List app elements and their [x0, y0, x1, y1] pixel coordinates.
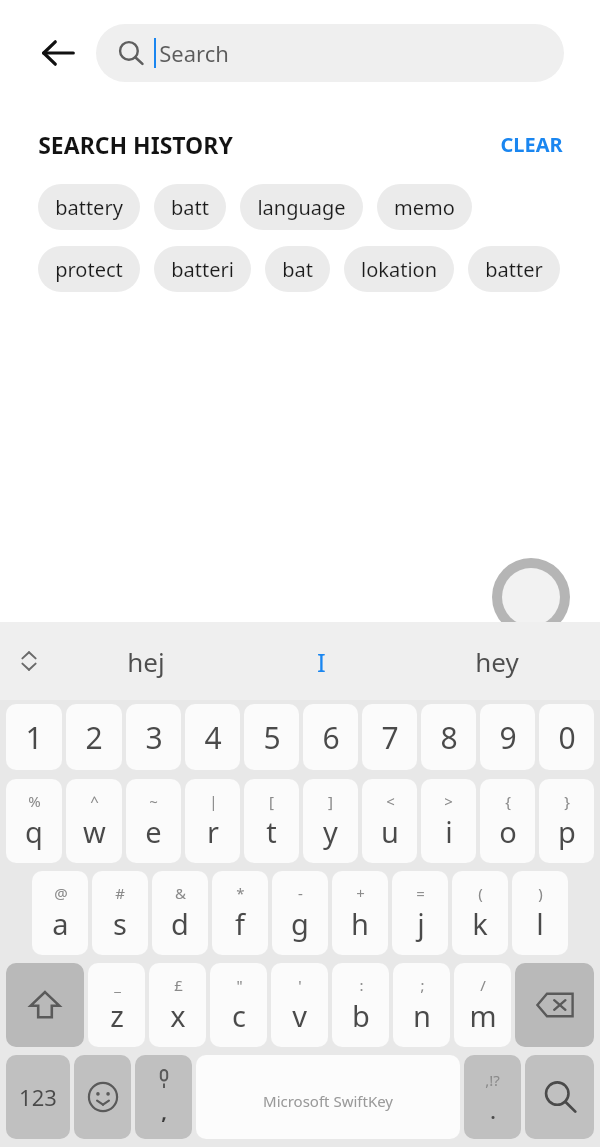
button[interactable]: _	[88, 963, 145, 1047]
button[interactable]: 0	[539, 704, 594, 770]
staticText: Microsoft SwiftKey	[263, 1091, 393, 1111]
button[interactable]: @	[32, 871, 88, 955]
button[interactable]: ;	[393, 963, 450, 1047]
staticText: batt	[171, 194, 209, 221]
staticText: ]	[328, 791, 333, 811]
button[interactable]: hey	[409, 622, 584, 700]
button[interactable]: Space	[196, 1055, 460, 1139]
staticText: _	[114, 975, 121, 995]
staticText: .	[490, 1100, 496, 1125]
button[interactable]: Shift	[6, 963, 84, 1047]
button[interactable]: 6	[303, 704, 358, 770]
staticText: 0	[558, 717, 576, 758]
staticText: }	[564, 791, 570, 811]
button[interactable]: '	[271, 963, 328, 1047]
staticText: batteri	[171, 256, 234, 283]
button[interactable]: Keyboard handle	[492, 558, 570, 636]
button[interactable]: batt	[154, 184, 226, 230]
button[interactable]: ~	[126, 779, 181, 863]
staticText: protect	[55, 256, 123, 283]
button[interactable]: <	[362, 779, 417, 863]
staticText: 2	[85, 717, 103, 758]
button[interactable]: 3	[126, 704, 181, 770]
button[interactable]: 1	[6, 704, 62, 770]
button[interactable]: :	[332, 963, 389, 1047]
button[interactable]: hej	[58, 622, 234, 700]
staticText: h	[351, 904, 369, 943]
button[interactable]: Expand suggestions	[0, 622, 58, 700]
staticText: l	[536, 904, 544, 943]
staticText: [	[269, 791, 274, 811]
staticText: x	[170, 996, 186, 1035]
button[interactable]: 123	[6, 1055, 70, 1139]
staticText: g	[291, 904, 309, 943]
button[interactable]: £	[149, 963, 206, 1047]
button[interactable]: &	[152, 871, 208, 955]
button[interactable]: #	[92, 871, 148, 955]
button[interactable]: 5	[244, 704, 299, 770]
button[interactable]: language	[240, 184, 363, 230]
button[interactable]: )	[512, 871, 568, 955]
staticText: memo	[394, 194, 455, 221]
button[interactable]: Backspace	[515, 963, 594, 1047]
staticText: d	[171, 904, 189, 943]
button[interactable]: batter	[468, 246, 560, 292]
button[interactable]: battery	[38, 184, 140, 230]
button[interactable]: 9	[480, 704, 535, 770]
button[interactable]: >	[421, 779, 476, 863]
staticText: SEARCH HISTORY	[38, 129, 233, 160]
button[interactable]: {	[480, 779, 535, 863]
staticText: ,	[161, 1098, 167, 1125]
button[interactable]: Search	[96, 24, 564, 82]
staticText: '	[298, 975, 302, 995]
button[interactable]: memo	[377, 184, 472, 230]
button[interactable]: +	[332, 871, 388, 955]
staticText: &	[175, 883, 186, 903]
button[interactable]: Punctuation	[464, 1055, 521, 1139]
staticText: |	[209, 791, 218, 811]
button[interactable]: Back	[26, 21, 90, 85]
staticText: (	[478, 883, 483, 903]
staticText: o	[499, 812, 517, 851]
button[interactable]: 4	[185, 704, 240, 770]
button[interactable]: CLEAR	[496, 127, 567, 162]
button[interactable]: bat	[265, 246, 330, 292]
button[interactable]: 7	[362, 704, 417, 770]
button[interactable]: *	[212, 871, 268, 955]
staticText: e	[145, 812, 162, 851]
button[interactable]: 8	[421, 704, 476, 770]
button[interactable]: "	[210, 963, 267, 1047]
button[interactable]: ^	[66, 779, 122, 863]
button[interactable]: [	[244, 779, 299, 863]
button[interactable]: =	[392, 871, 448, 955]
staticText: lokation	[361, 256, 437, 283]
button[interactable]: /	[454, 963, 511, 1047]
button[interactable]: Emoji	[74, 1055, 131, 1139]
button[interactable]: protect	[38, 246, 140, 292]
button[interactable]: Voice input and comma	[135, 1055, 192, 1139]
button[interactable]: 2	[66, 704, 122, 770]
button[interactable]: |	[185, 779, 240, 863]
staticText: ~	[149, 791, 158, 811]
button[interactable]: ]	[303, 779, 358, 863]
staticText: I	[317, 644, 326, 679]
staticText: "	[236, 975, 243, 995]
button[interactable]: lokation	[344, 246, 454, 292]
button[interactable]: }	[539, 779, 594, 863]
staticText: 9	[499, 717, 517, 758]
button[interactable]: Search	[525, 1055, 594, 1139]
staticText: :	[359, 975, 364, 995]
staticText: s	[113, 904, 127, 943]
button[interactable]: I	[234, 622, 409, 700]
staticText: v	[292, 996, 307, 1035]
staticText: *	[236, 883, 245, 903]
button[interactable]: (	[452, 871, 508, 955]
staticText: c	[232, 996, 246, 1035]
button[interactable]: %	[6, 779, 62, 863]
staticText: +	[356, 883, 365, 903]
staticText: hey	[475, 644, 519, 679]
staticText: #	[115, 883, 125, 903]
button[interactable]: batteri	[154, 246, 251, 292]
button[interactable]: -	[272, 871, 328, 955]
staticText: )	[538, 883, 543, 903]
